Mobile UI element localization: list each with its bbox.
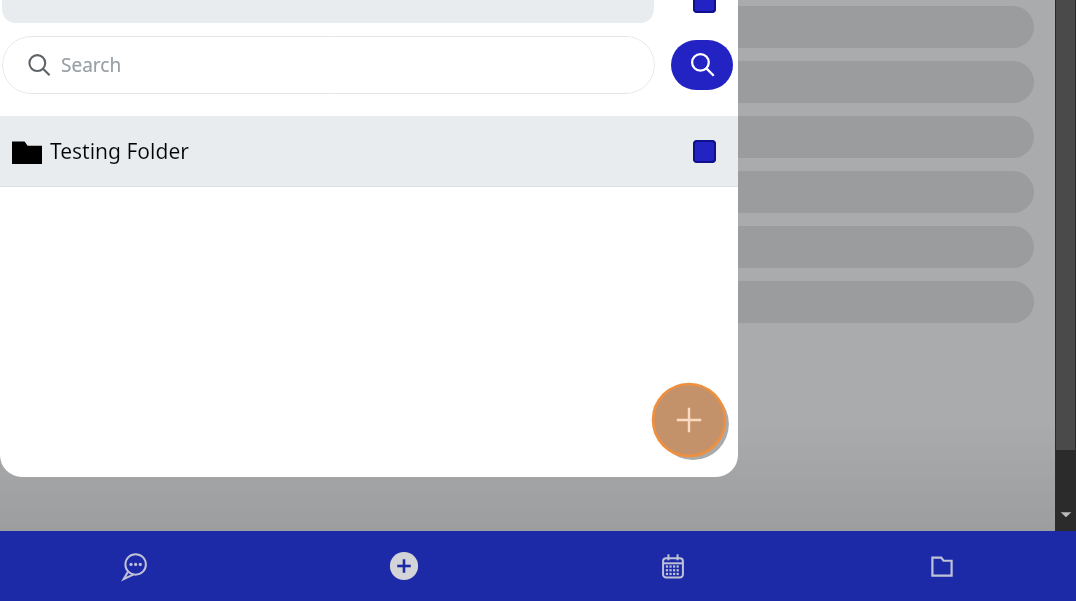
button[interactable]: Add (652, 383, 726, 457)
button[interactable]: Search (671, 40, 733, 90)
button[interactable]: Testing Folder (0, 116, 738, 186)
button[interactable] (693, 0, 716, 13)
button[interactable]: Chats (0, 531, 269, 601)
button[interactable]: Search (2, 36, 655, 94)
button[interactable]: Calendar (538, 531, 807, 601)
button[interactable]: Select folder (693, 140, 716, 163)
button[interactable]: New (269, 531, 538, 601)
button[interactable]: Folders (807, 531, 1076, 601)
staticText: Testing Folder (50, 137, 189, 166)
staticText: Search (61, 52, 122, 78)
